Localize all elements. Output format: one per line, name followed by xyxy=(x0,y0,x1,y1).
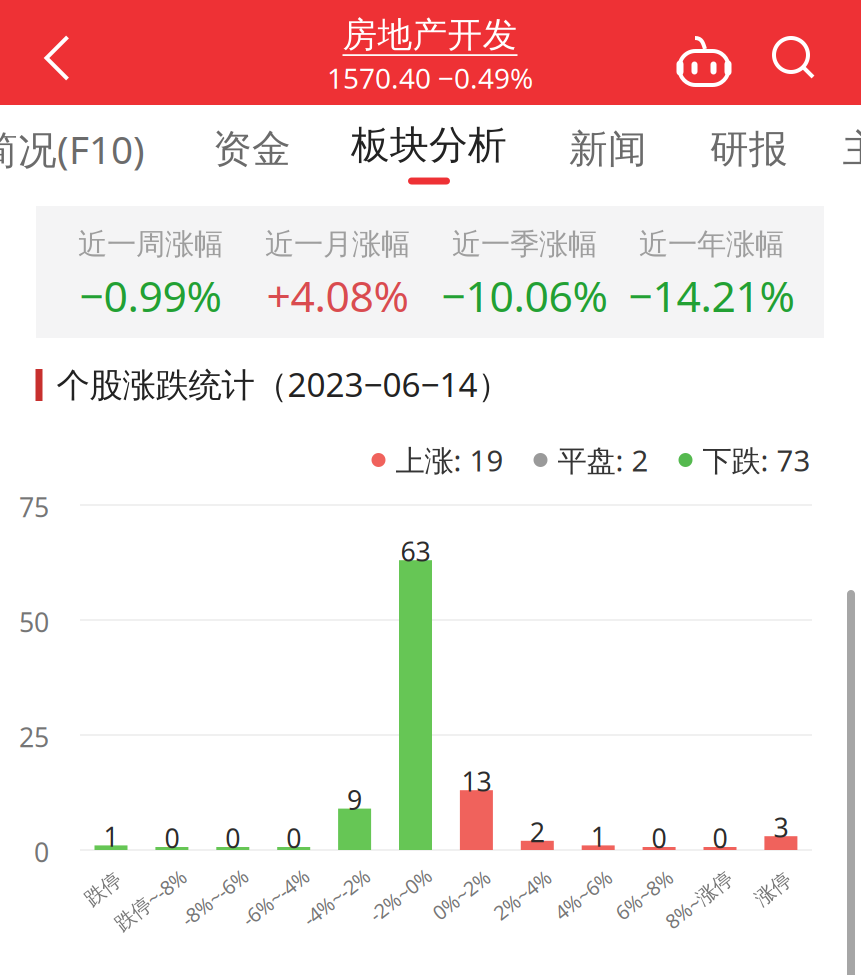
staticText: −10.06% xyxy=(441,267,607,324)
staticText: 0 xyxy=(286,820,301,856)
staticText: 主 xyxy=(842,125,861,173)
staticText: 近一月涨幅 xyxy=(265,226,410,262)
staticText: 1570.40 −0.49% xyxy=(327,59,533,96)
staticText: 13 xyxy=(461,763,491,799)
staticText: -6%~-4% xyxy=(236,884,315,911)
button[interactable]: 资金 xyxy=(182,102,322,196)
staticText: 下跌: 73 xyxy=(702,440,810,479)
staticText: -2%~0% xyxy=(364,881,437,908)
staticText: 新闻 xyxy=(569,125,647,173)
staticText: -4%~-2% xyxy=(297,884,376,911)
staticText: 8%~涨停 xyxy=(659,886,738,913)
staticText: 0%~2% xyxy=(428,881,495,908)
button[interactable]: 板块分析 xyxy=(329,102,529,196)
staticText: 板块分析 xyxy=(351,121,507,169)
button[interactable]: AI assistant xyxy=(669,15,739,105)
staticText: 3 xyxy=(773,809,788,845)
staticText: −14.21% xyxy=(628,267,794,324)
staticText: 4%~6% xyxy=(550,881,617,908)
button[interactable]: 新闻 xyxy=(538,102,678,196)
staticText: 2%~4% xyxy=(489,881,556,908)
staticText: 资金 xyxy=(213,125,291,173)
staticText: −0.99% xyxy=(79,267,221,324)
staticText: 简况(F10) xyxy=(0,123,145,175)
staticText: -8%~-6% xyxy=(175,884,254,911)
staticText: 1 xyxy=(103,819,118,854)
staticText: 近一周涨幅 xyxy=(78,226,223,262)
button[interactable]: Back xyxy=(11,5,103,110)
staticText: 涨停 xyxy=(753,877,793,902)
staticText: 近一季涨幅 xyxy=(452,226,597,262)
staticText: 0 xyxy=(712,820,727,856)
button[interactable]: 简况(F10) xyxy=(0,102,167,196)
staticText: 0 xyxy=(225,820,240,856)
staticText: 25 xyxy=(19,719,49,755)
staticText: 1 xyxy=(591,819,606,854)
staticText: 上涨: 19 xyxy=(395,440,503,479)
staticText: 近一年涨幅 xyxy=(639,226,784,262)
staticText: 平盘: 2 xyxy=(557,440,648,479)
staticText: 0 xyxy=(652,820,667,856)
staticText: 0 xyxy=(34,834,49,870)
button[interactable]: 研报 xyxy=(679,102,819,196)
staticText: 75 xyxy=(19,489,49,525)
staticText: 研报 xyxy=(710,125,788,173)
staticText: 跌停~-8% xyxy=(108,886,193,913)
staticText: 9 xyxy=(347,782,362,817)
staticText: +4.08% xyxy=(266,267,408,324)
staticText: 63 xyxy=(400,533,430,569)
button[interactable]: Search xyxy=(759,13,829,103)
staticText: 房地产开发 xyxy=(342,14,517,56)
staticText: 2 xyxy=(530,814,545,849)
staticText: 6%~8% xyxy=(611,881,678,908)
staticText: 个股涨跌统计（2023−06−14） xyxy=(56,362,510,406)
staticText: 跌停 xyxy=(83,877,123,902)
staticText: 50 xyxy=(19,604,49,640)
staticText: 0 xyxy=(164,820,179,856)
